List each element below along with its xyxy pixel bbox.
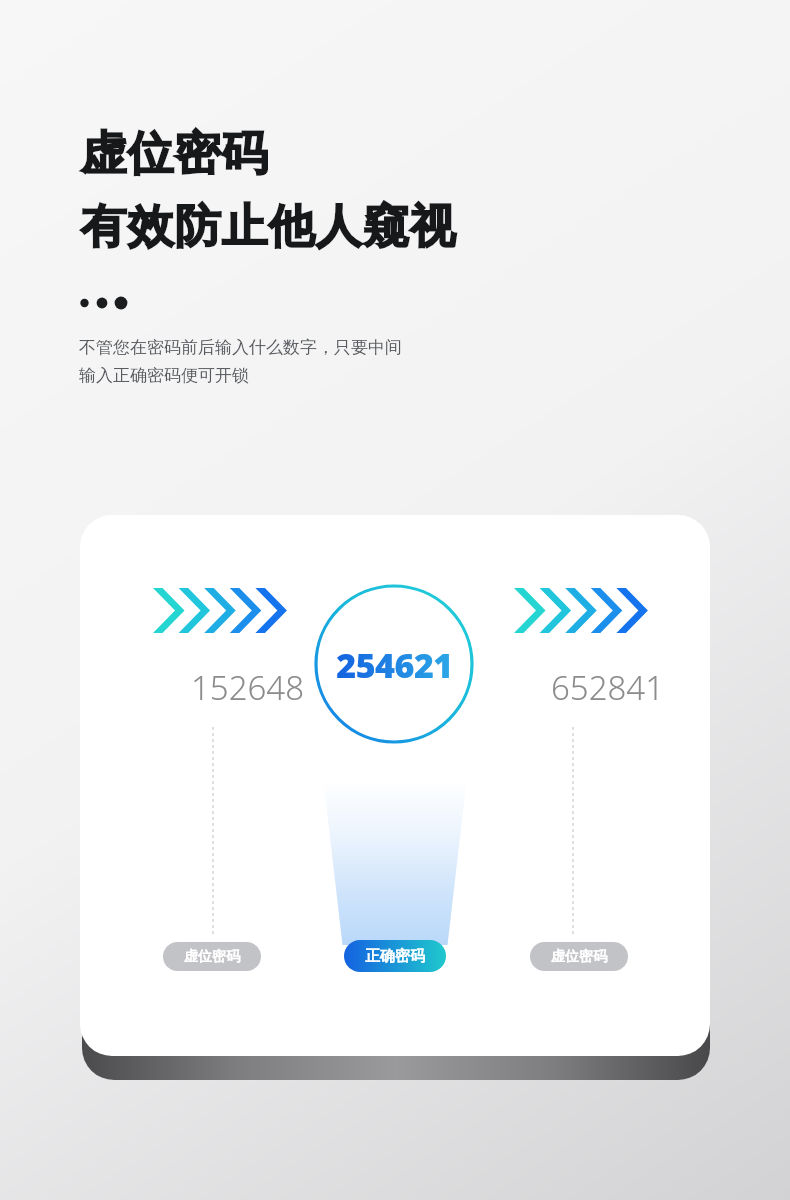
- button[interactable]: 虚位密码: [530, 942, 628, 971]
- button[interactable]: Decoy digits flow right: [80, 515, 710, 1056]
- staticText: 虚位密码: [184, 948, 240, 966]
- staticText: 652841: [551, 665, 665, 709]
- other: Decoy digits flow right: [153, 588, 281, 633]
- staticText: 虚位密码: [80, 125, 268, 183]
- staticText: 152648: [191, 665, 305, 709]
- staticText: 有效防止他人窥视: [80, 198, 456, 256]
- other: Decoy digits flow right: [514, 588, 642, 633]
- staticText: 254621: [336, 642, 453, 688]
- staticText: 虚位密码: [551, 948, 607, 966]
- staticText: 正确密码: [365, 947, 425, 966]
- staticText: 不管您在密码前后输入什么数字，只要中间 输入正确密码便可开锁: [79, 337, 402, 386]
- button[interactable]: 虚位密码: [163, 942, 261, 971]
- button[interactable]: 正确密码: [344, 940, 446, 972]
